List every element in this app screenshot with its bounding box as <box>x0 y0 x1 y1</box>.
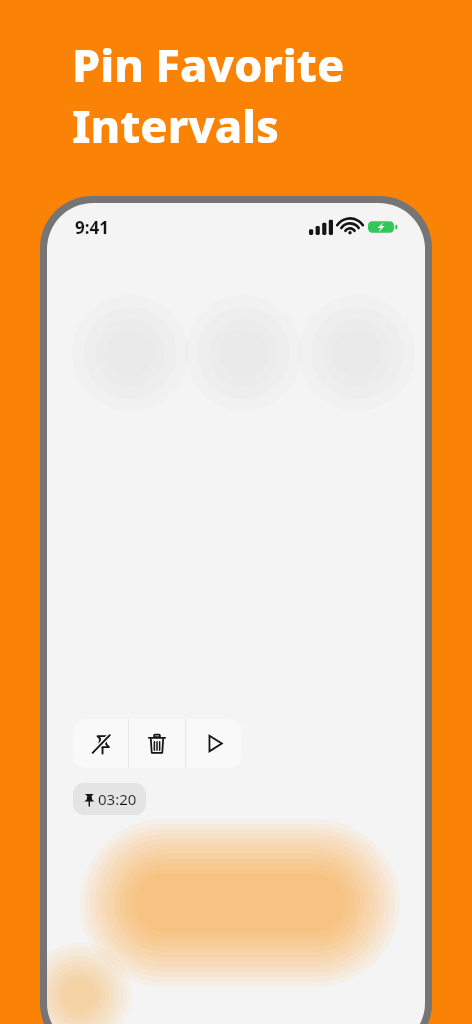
staticText: Intervals <box>72 95 279 156</box>
button[interactable]: 03:20 <box>73 783 146 815</box>
staticText: 03:20 <box>98 789 137 809</box>
staticText: Pin Favorite <box>72 34 345 95</box>
button[interactable]: Play <box>186 719 242 768</box>
button[interactable]: Delete <box>129 719 185 768</box>
button[interactable]: Unpin <box>73 719 128 768</box>
staticText: 9:41 <box>75 216 109 239</box>
